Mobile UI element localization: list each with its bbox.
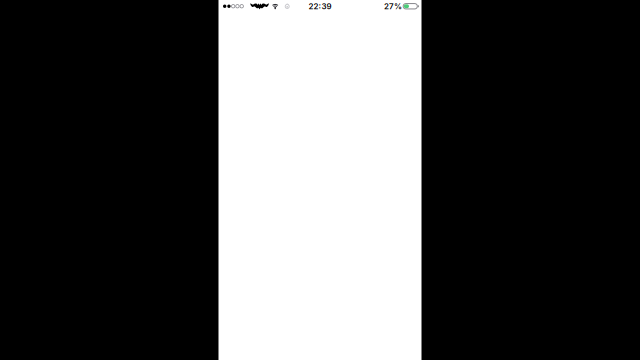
staticText: 22:39 xyxy=(308,1,331,11)
staticText: 27% xyxy=(384,1,402,11)
